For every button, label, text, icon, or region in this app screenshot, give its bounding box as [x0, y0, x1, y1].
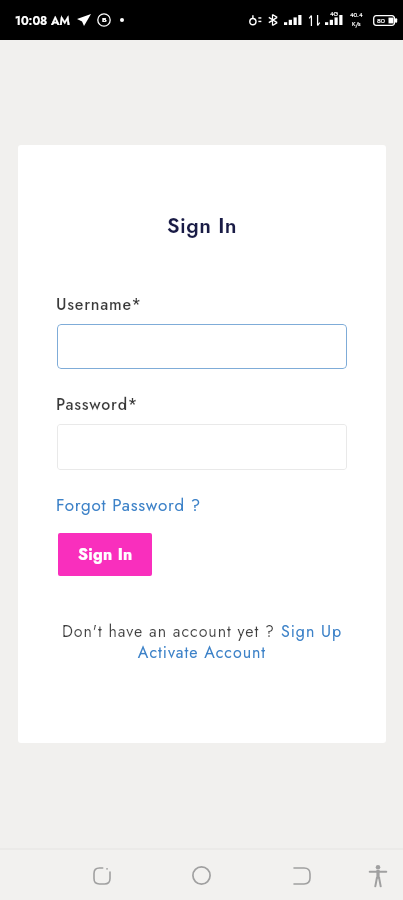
staticText: 40.4	[350, 11, 363, 20]
button[interactable]: Back	[281, 855, 322, 896]
button[interactable]: Forgot Password ?	[56, 493, 202, 518]
staticText: 80	[377, 16, 386, 26]
staticText: Don't have an account yet ?	[62, 620, 281, 643]
button[interactable]: Activate Account	[18, 641, 386, 664]
button[interactable]: Recent apps	[81, 855, 122, 896]
staticText: 4G	[330, 10, 339, 19]
button[interactable]: Accessibility	[357, 855, 398, 896]
staticText: K/s	[352, 20, 361, 29]
staticText: Username*	[56, 293, 142, 316]
button[interactable]: Home	[181, 855, 222, 896]
button[interactable]	[57, 324, 347, 369]
button[interactable]: Sign Up	[281, 620, 343, 643]
staticText: 10:08 AM	[15, 12, 70, 29]
staticText: Sign In	[78, 543, 133, 566]
button[interactable]	[57, 424, 347, 470]
staticText: B	[102, 15, 107, 25]
staticText: Sign In	[18, 211, 386, 241]
staticText: Password*	[56, 393, 139, 416]
button[interactable]: Sign In	[58, 533, 152, 576]
